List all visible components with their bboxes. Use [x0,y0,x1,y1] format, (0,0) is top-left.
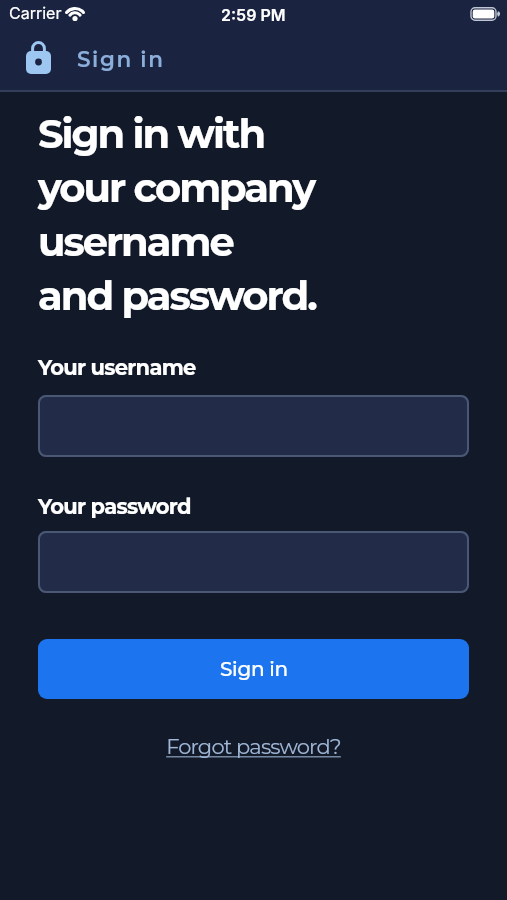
staticText: 2:59 PM [221,5,286,24]
button[interactable]: Forgot password? [38,734,469,760]
staticText: Sign in [220,657,288,681]
staticText: Forgot password? [166,734,341,760]
staticText: Carrier [9,3,62,22]
staticText: Sign in with your company username and p… [38,109,316,320]
staticText: Sign in [77,46,165,72]
staticText: Your password [38,494,191,520]
button[interactable] [38,531,469,593]
button[interactable] [38,395,469,457]
staticText: Your username [38,355,196,381]
button[interactable]: Sign in [38,639,469,699]
